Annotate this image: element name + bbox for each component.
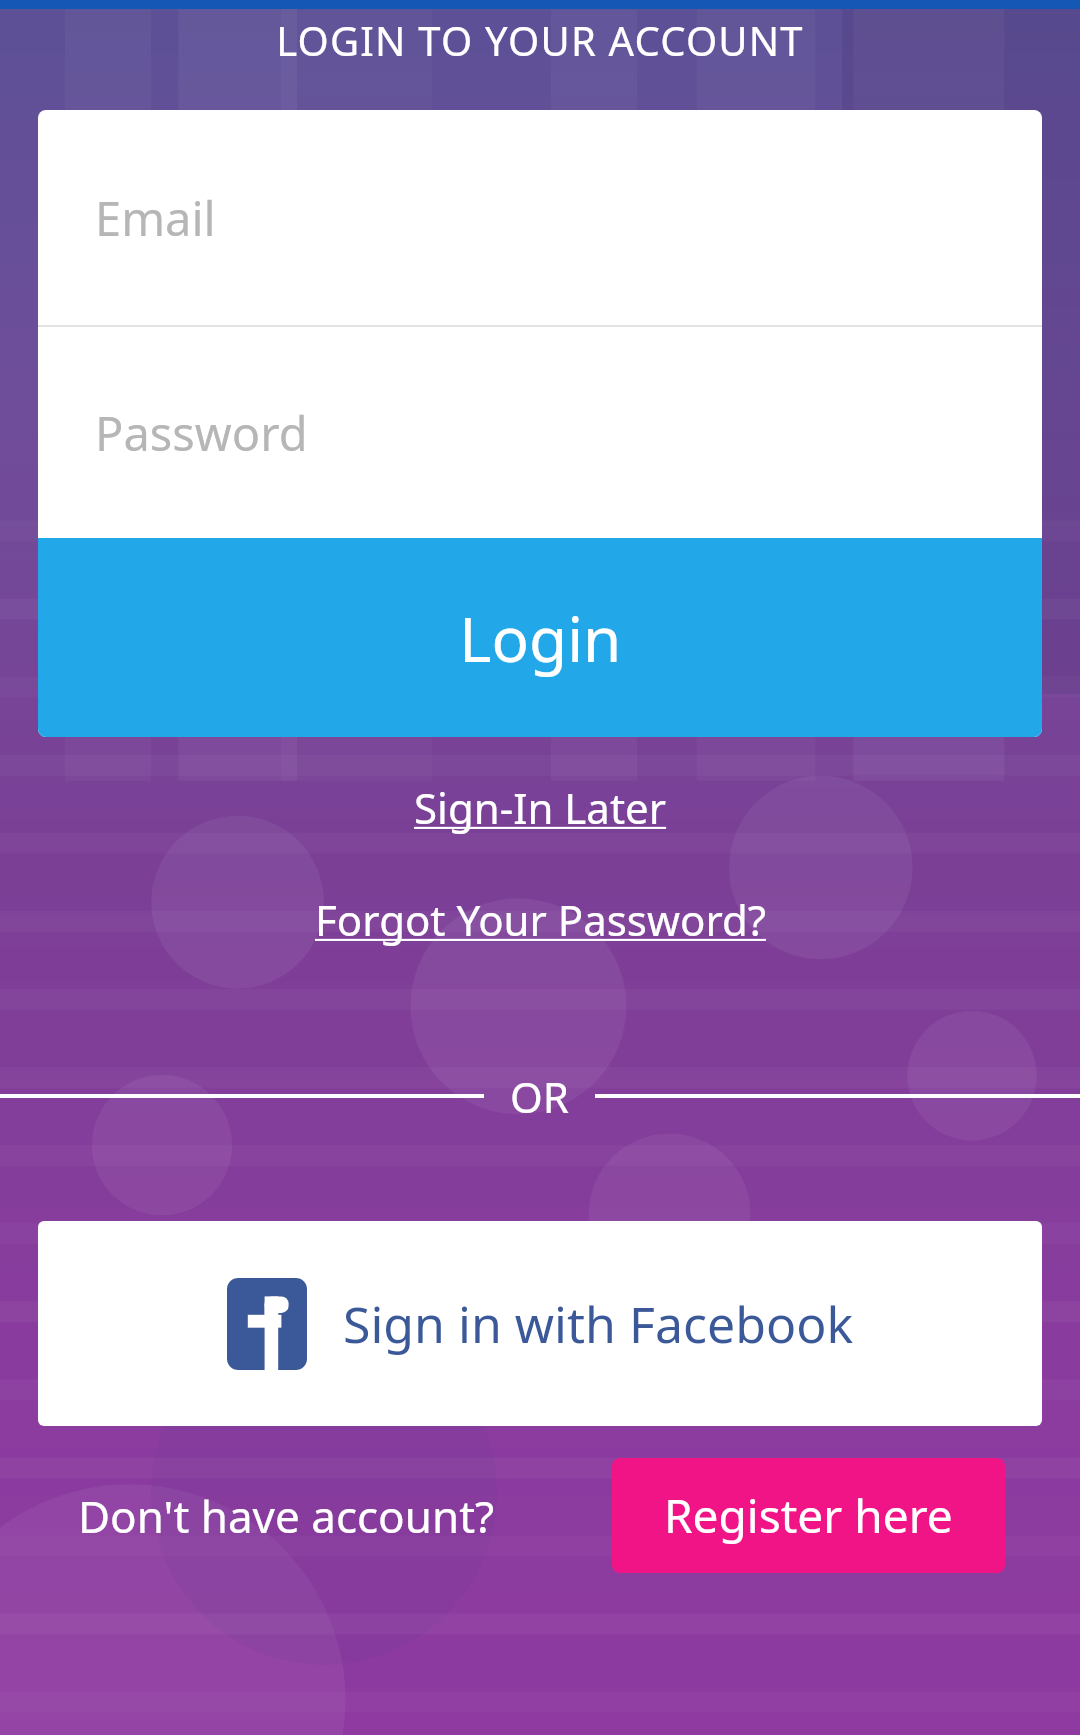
button[interactable]: Email <box>38 110 1042 325</box>
staticText: Email <box>95 186 216 250</box>
staticText: Login <box>459 596 622 680</box>
staticText: Register here <box>664 1484 953 1547</box>
staticText: Sign-In Later <box>414 779 667 836</box>
staticText: Password <box>95 401 308 465</box>
button[interactable]: Password <box>38 327 1042 538</box>
staticText: Forgot Your Password? <box>315 891 766 947</box>
staticText: Don't have account? <box>78 1486 495 1546</box>
button[interactable]: Login <box>38 538 1042 737</box>
staticText: LOGIN TO YOUR ACCOUNT <box>276 13 804 67</box>
staticText: OR <box>510 1068 569 1125</box>
button[interactable]: Register here <box>612 1458 1005 1573</box>
button[interactable]: Sign-In Later <box>402 771 679 844</box>
button[interactable]: Forgot Your Password? <box>303 883 778 955</box>
staticText: Sign in with Facebook <box>343 1290 854 1358</box>
button[interactable]: Sign in with Facebook <box>38 1221 1042 1426</box>
